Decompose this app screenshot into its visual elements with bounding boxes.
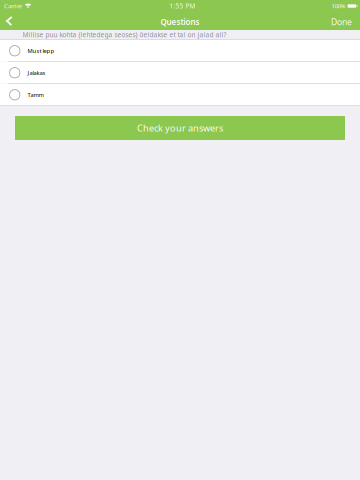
staticText: Jalakas (27, 69, 45, 77)
staticText: Carrier (4, 2, 22, 10)
button[interactable]: Check your answers (15, 116, 345, 140)
button[interactable]: Back (0, 14, 20, 30)
button[interactable]: Done (324, 13, 360, 31)
button[interactable]: Jalakas (0, 62, 360, 83)
staticText: Questions (160, 17, 199, 27)
staticText: 100% (332, 2, 346, 10)
staticText: Done (331, 16, 352, 28)
button[interactable]: Must lepp (0, 40, 360, 61)
staticText: 1:55 PM (169, 2, 195, 10)
staticText: Millise puu kohta (lehtedega seoses) öel… (22, 30, 226, 39)
staticText: Must lepp (27, 47, 54, 55)
staticText: Check your answers (137, 122, 223, 134)
button[interactable]: Tamm (0, 84, 360, 105)
staticText: Tamm (27, 91, 43, 99)
